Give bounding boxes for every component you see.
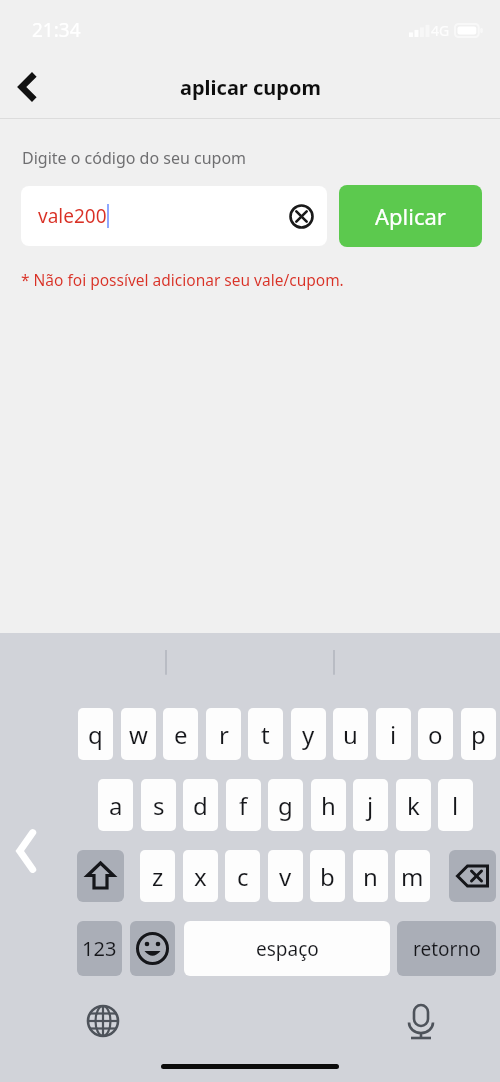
staticText: r [219,718,229,751]
button[interactable]: Ditado por voz [396,996,446,1046]
button[interactable]: x [183,850,218,902]
staticText: 4G [431,21,450,40]
staticText: aplicar cupom [180,74,321,101]
staticText: g [278,789,293,822]
staticText: j [367,789,374,822]
button[interactable]: e [163,708,198,760]
staticText: k [407,789,420,822]
button[interactable]: 123 [77,921,122,976]
button[interactable]: a [98,779,133,831]
button[interactable]: b [310,850,345,902]
staticText: l [452,789,459,822]
button[interactable]: m [395,850,430,902]
staticText: x [194,860,207,893]
button[interactable]: Mudar idioma [78,996,128,1046]
button[interactable]: vale200 [21,186,327,246]
button[interactable]: s [141,779,176,831]
staticText: p [471,718,486,751]
button[interactable]: Limpar [279,194,323,238]
button[interactable]: p [461,708,496,760]
staticText: e [174,718,188,751]
button[interactable]: espaço [184,921,390,976]
button[interactable]: Apagar [449,850,496,902]
button[interactable]: g [268,779,303,831]
button[interactable]: f [226,779,261,831]
button[interactable]: u [333,708,368,760]
button[interactable]: w [121,708,156,760]
staticText: d [193,789,208,822]
staticText: w [129,718,148,751]
staticText: z [152,860,164,893]
button[interactable]: q [78,708,113,760]
staticText: 123 [82,935,117,962]
button[interactable]: retorno [397,921,496,976]
button[interactable]: k [396,779,431,831]
staticText: y [302,718,315,751]
staticText: retorno [413,936,481,962]
staticText: c [237,860,249,893]
button[interactable]: Voltar [0,59,56,115]
staticText: f [239,789,248,822]
button[interactable]: y [291,708,326,760]
button[interactable]: n [353,850,388,902]
button[interactable]: j [353,779,388,831]
staticText: t [261,718,270,751]
staticText: i [390,718,397,751]
button[interactable]: Shift [77,850,124,902]
staticText: a [109,789,123,822]
button[interactable]: r [206,708,241,760]
staticText: espaço [256,936,319,962]
button[interactable]: i [376,708,411,760]
button[interactable]: h [311,779,346,831]
staticText: 21:34 [32,17,81,43]
staticText: b [320,860,335,893]
button[interactable]: o [418,708,453,760]
button[interactable]: Emoji [130,921,175,976]
staticText: Aplicar [375,201,446,231]
button[interactable]: Aplicar [339,185,482,247]
staticText: q [88,718,103,751]
staticText: Digite o código do seu cupom [22,147,247,169]
staticText: s [153,789,165,822]
button[interactable]: d [183,779,218,831]
staticText: u [343,718,358,751]
staticText: n [363,860,378,893]
button[interactable]: t [248,708,283,760]
staticText: vale200 [38,203,107,229]
staticText: h [321,789,336,822]
button[interactable]: z [140,850,175,902]
staticText: v [279,860,292,893]
staticText: * Não foi possível adicionar seu vale/cu… [21,269,344,290]
button[interactable]: v [268,850,303,902]
staticText: m [401,860,424,893]
button[interactable]: l [438,779,473,831]
button[interactable]: c [225,850,260,902]
staticText: o [428,718,443,751]
